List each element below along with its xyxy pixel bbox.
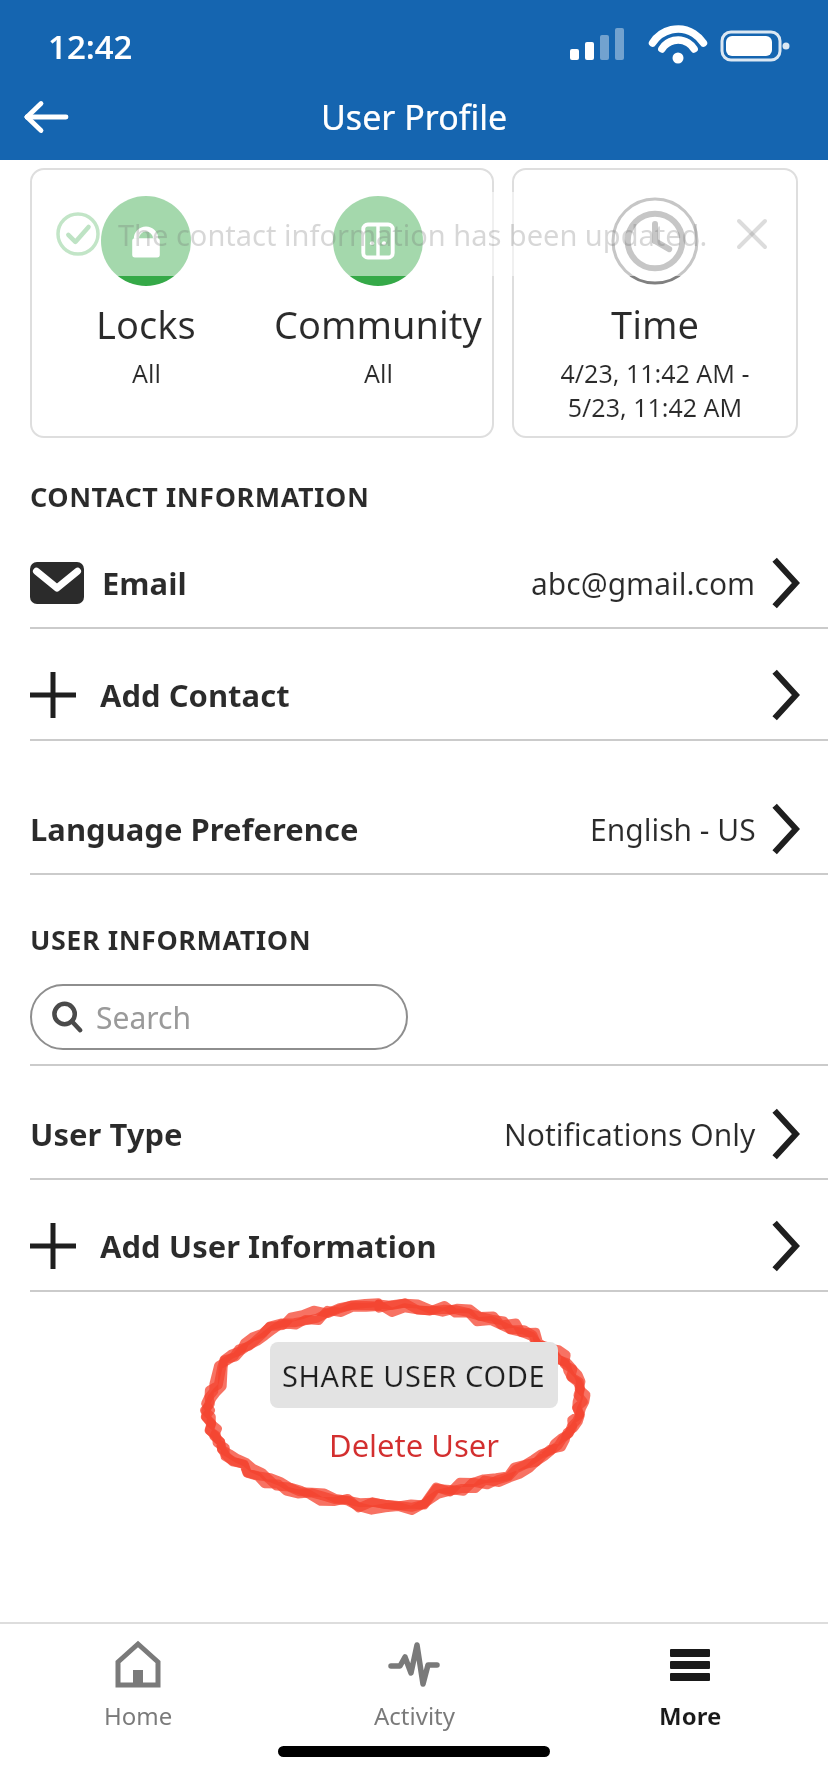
staticText: User Profile <box>321 94 508 140</box>
staticText: Time <box>611 298 699 350</box>
staticText: Email <box>102 562 187 604</box>
staticText: All <box>364 356 393 390</box>
staticText: Language Preference <box>30 808 359 850</box>
staticText: Delete User <box>329 1424 500 1466</box>
button[interactable]: Home <box>0 1624 276 1746</box>
button[interactable]: User Type <box>0 1090 828 1178</box>
staticText: Search <box>96 997 191 1038</box>
staticText: Home <box>104 1699 173 1732</box>
button[interactable]: Locks <box>30 168 494 438</box>
button[interactable]: Activity <box>276 1624 552 1746</box>
staticText: USER INFORMATION <box>30 921 312 958</box>
staticText: User Type <box>30 1113 183 1155</box>
staticText: Add Contact <box>100 674 290 716</box>
button[interactable]: Search <box>30 984 408 1050</box>
staticText: SHARE USER CODE <box>282 1356 546 1395</box>
button[interactable]: Back <box>20 92 70 142</box>
staticText: Community <box>274 298 482 350</box>
staticText: 12:42 <box>48 24 133 69</box>
staticText: CONTACT INFORMATION <box>30 478 370 515</box>
button[interactable]: SHARE USER CODE <box>270 1342 558 1408</box>
staticText: The contact information has been updated… <box>118 215 708 254</box>
button[interactable]: Language Preference <box>0 785 828 873</box>
staticText: abc@gmail.com <box>531 563 756 604</box>
button[interactable]: Add User Information <box>0 1202 828 1290</box>
button[interactable]: More <box>552 1624 828 1746</box>
staticText: English - US <box>590 809 756 850</box>
staticText: More <box>659 1699 722 1732</box>
staticText: Locks <box>96 298 196 350</box>
staticText: All <box>132 356 161 390</box>
button[interactable]: Delete User <box>309 1418 520 1472</box>
button[interactable]: Time <box>512 168 798 438</box>
staticText: Add User Information <box>100 1225 437 1267</box>
staticText: 4/23, 11:42 AM - 5/23, 11:42 AM <box>560 356 750 424</box>
button[interactable]: Email <box>0 539 828 627</box>
staticText: Notifications Only <box>504 1114 756 1155</box>
button[interactable]: Add Contact <box>0 651 828 739</box>
staticText: Activity <box>374 1699 455 1732</box>
button[interactable]: Dismiss <box>732 214 772 254</box>
